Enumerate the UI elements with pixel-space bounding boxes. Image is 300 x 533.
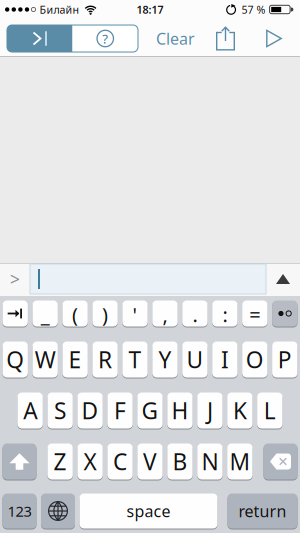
button[interactable]: P: [272, 341, 297, 378]
staticText: W: [35, 344, 56, 374]
staticText: V: [143, 446, 157, 476]
button[interactable]: Share: [216, 26, 235, 50]
button[interactable]: T: [122, 341, 148, 378]
button[interactable]: 123: [2, 493, 36, 529]
staticText: A: [23, 395, 37, 425]
button[interactable]: .: [182, 300, 208, 327]
staticText: .: [192, 301, 197, 328]
button[interactable]: V: [137, 443, 163, 480]
staticText: N: [201, 446, 218, 476]
button[interactable]: K: [227, 392, 253, 429]
staticText: G: [141, 395, 158, 425]
button[interactable]: G: [137, 392, 163, 429]
button[interactable]: B: [167, 443, 193, 480]
button[interactable]: (: [62, 300, 88, 327]
staticText: H: [171, 395, 188, 425]
staticText: D: [82, 395, 99, 425]
button[interactable]: Command input: [30, 264, 266, 294]
staticText: (: [72, 301, 78, 328]
staticText: L: [264, 395, 276, 425]
staticText: Z: [54, 446, 67, 476]
button[interactable]: A: [17, 392, 43, 429]
button[interactable]: H: [167, 392, 193, 429]
staticText: :: [222, 301, 227, 328]
button[interactable]: Clear: [156, 28, 195, 49]
button[interactable]: Console: [7, 25, 72, 52]
staticText: =: [249, 301, 260, 328]
button[interactable]: F: [107, 392, 133, 429]
staticText: 18:17: [136, 2, 163, 17]
staticText: J: [207, 395, 213, 425]
staticText: ): [102, 301, 108, 328]
button[interactable]: M: [227, 443, 253, 480]
button[interactable]: N: [197, 443, 223, 480]
staticText: O: [246, 344, 264, 374]
button[interactable]: Next keyboard: [41, 493, 75, 529]
staticText: Clear: [156, 28, 195, 49]
staticText: C: [113, 446, 127, 476]
button[interactable]: space: [79, 493, 217, 529]
button[interactable]: Q: [2, 341, 28, 378]
button[interactable]: J: [197, 392, 223, 429]
staticText: ,: [162, 301, 167, 328]
button[interactable]: S: [47, 392, 73, 429]
button[interactable]: =: [242, 300, 268, 327]
button[interactable]: Submit: [266, 264, 300, 293]
button[interactable]: Run: [266, 29, 282, 47]
staticText: Q: [6, 344, 24, 374]
staticText: Билайн: [40, 2, 80, 17]
staticText: E: [69, 344, 82, 374]
staticText: F: [114, 395, 126, 425]
button[interactable]: _: [32, 300, 58, 327]
button[interactable]: R: [92, 341, 118, 378]
staticText: 123: [7, 501, 31, 521]
staticText: S: [54, 395, 66, 425]
staticText: T: [128, 344, 141, 374]
staticText: U: [186, 344, 203, 374]
staticText: M: [229, 446, 250, 476]
staticText: P: [278, 344, 292, 374]
staticText: 57 %: [242, 2, 266, 17]
staticText: _: [41, 301, 50, 328]
button[interactable]: E: [62, 341, 88, 378]
button[interactable]: Y: [152, 341, 178, 378]
button[interactable]: Z: [47, 443, 73, 480]
button[interactable]: Tab: [2, 300, 28, 327]
button[interactable]: :: [212, 300, 238, 327]
button[interactable]: ': [122, 300, 148, 327]
button[interactable]: L: [257, 392, 282, 429]
button[interactable]: ): [92, 300, 118, 327]
staticText: return: [238, 500, 286, 522]
button[interactable]: C: [107, 443, 133, 480]
button[interactable]: ,: [152, 300, 178, 327]
button[interactable]: O: [242, 341, 268, 378]
staticText: Y: [158, 344, 171, 374]
staticText: K: [233, 395, 247, 425]
staticText: B: [172, 446, 187, 476]
staticText: ?: [102, 30, 108, 47]
button[interactable]: X: [77, 443, 103, 480]
staticText: X: [84, 446, 97, 476]
button[interactable]: Shift: [2, 443, 36, 480]
button[interactable]: return: [227, 493, 297, 529]
staticText: >: [10, 267, 20, 290]
staticText: space: [126, 500, 170, 522]
staticText: ': [132, 301, 137, 328]
button[interactable]: Help: [72, 25, 138, 52]
staticText: I: [221, 344, 229, 374]
button[interactable]: D: [77, 392, 103, 429]
staticText: R: [98, 344, 112, 374]
button[interactable]: More keys: [272, 300, 297, 327]
button[interactable]: U: [182, 341, 208, 378]
button[interactable]: I: [212, 341, 238, 378]
button[interactable]: W: [32, 341, 58, 378]
button[interactable]: Delete: [263, 443, 297, 480]
